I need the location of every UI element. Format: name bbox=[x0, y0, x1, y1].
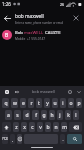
staticText: s bbox=[16, 112, 19, 119]
staticText: r bbox=[30, 100, 33, 107]
button[interactable]: n bbox=[53, 122, 59, 132]
staticText: u bbox=[53, 100, 57, 107]
button[interactable]: g bbox=[41, 110, 47, 120]
staticText: Bob bbox=[15, 30, 24, 36]
button[interactable]: Emoji bbox=[17, 134, 22, 144]
staticText: ?123 bbox=[2, 137, 8, 141]
button[interactable]: e bbox=[20, 98, 26, 108]
button[interactable]: x bbox=[21, 122, 27, 132]
button[interactable]: Voice input bbox=[14, 89, 20, 95]
staticText: d bbox=[25, 112, 29, 119]
button[interactable]: b bbox=[45, 122, 51, 132]
button[interactable]: Comma bbox=[10, 134, 15, 144]
button[interactable]: More options bbox=[76, 89, 82, 95]
button[interactable]: Search bbox=[67, 134, 82, 144]
staticText: h bbox=[50, 112, 54, 119]
staticText: w bbox=[13, 100, 17, 107]
button[interactable]: ?123 bbox=[2, 134, 8, 144]
button[interactable]: k bbox=[65, 110, 71, 120]
button[interactable]: l bbox=[73, 110, 79, 120]
button[interactable]: y bbox=[44, 98, 50, 108]
staticText: x bbox=[23, 124, 26, 131]
staticText: m bbox=[62, 124, 67, 131]
staticText: maxWELL bbox=[24, 30, 44, 36]
button[interactable]: Clear text bbox=[68, 10, 84, 26]
staticText: bob maxwell bbox=[15, 13, 44, 20]
staticText: CAUZTE bbox=[44, 30, 61, 36]
button[interactable]: w bbox=[11, 98, 18, 108]
staticText: f bbox=[35, 112, 37, 119]
staticText: g bbox=[42, 112, 46, 119]
button[interactable]: z bbox=[13, 122, 19, 132]
button[interactable]: p bbox=[76, 98, 82, 108]
staticText: e bbox=[22, 100, 25, 107]
button[interactable]: o bbox=[68, 98, 74, 108]
button[interactable]: d bbox=[23, 110, 30, 120]
staticText: c bbox=[31, 124, 34, 131]
button[interactable]: q bbox=[2, 98, 9, 108]
staticText: o bbox=[69, 100, 73, 107]
staticText: a bbox=[7, 112, 10, 119]
staticText: i bbox=[62, 100, 64, 107]
staticText: bob maxwell bbox=[32, 89, 55, 94]
button[interactable]: h bbox=[49, 110, 55, 120]
button[interactable]: Backspace bbox=[69, 122, 82, 132]
staticText: j bbox=[59, 112, 61, 119]
button[interactable]: Stickers bbox=[4, 89, 10, 95]
button[interactable]: c bbox=[29, 122, 35, 132]
staticText: . bbox=[62, 137, 64, 142]
button[interactable]: v bbox=[37, 122, 43, 132]
staticText: q bbox=[4, 100, 8, 107]
button[interactable]: i bbox=[60, 98, 66, 108]
staticText: p bbox=[77, 100, 81, 107]
staticText: Mobile +1 555-0147 bbox=[15, 37, 46, 41]
button[interactable]: a bbox=[5, 110, 12, 120]
staticText: k bbox=[67, 112, 70, 119]
button[interactable]: u bbox=[52, 98, 58, 108]
staticText: l bbox=[75, 112, 77, 119]
staticText: y bbox=[46, 100, 49, 107]
button[interactable]: f bbox=[32, 110, 39, 120]
staticText: t bbox=[38, 100, 40, 107]
button[interactable]: j bbox=[57, 110, 63, 120]
button[interactable]: t bbox=[36, 98, 42, 108]
staticText: B bbox=[5, 32, 9, 39]
staticText: n bbox=[54, 124, 58, 131]
staticText: v bbox=[39, 124, 42, 131]
staticText: b bbox=[46, 124, 50, 131]
button[interactable]: s bbox=[14, 110, 21, 120]
staticText: , bbox=[12, 137, 14, 142]
button[interactable]: Settings bbox=[67, 89, 73, 95]
staticText: 26 bbox=[60, 2, 65, 7]
button[interactable]: Back bbox=[0, 11, 15, 26]
button[interactable]: r bbox=[28, 98, 34, 108]
button[interactable]: . bbox=[60, 134, 65, 144]
button[interactable]: m bbox=[61, 122, 67, 132]
staticText: 1:26 bbox=[2, 1, 11, 7]
staticText: z bbox=[15, 124, 18, 131]
staticText: Enter a name, phone number or email bbox=[15, 21, 64, 25]
button[interactable]: B bbox=[0, 28, 84, 42]
button[interactable]: Shift bbox=[2, 122, 11, 132]
